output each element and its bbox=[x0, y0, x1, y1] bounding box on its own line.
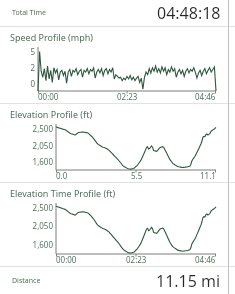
staticText: Total Time bbox=[12, 8, 46, 18]
staticText: Speed Profile (mph) bbox=[10, 31, 93, 43]
button[interactable]: Elevation Time Profile (ft) bbox=[0, 183, 235, 266]
staticText: 04:46 bbox=[195, 254, 216, 265]
staticText: 11.15 mi bbox=[156, 270, 221, 292]
staticText: 2,500 bbox=[32, 202, 53, 213]
staticText: 2,050 bbox=[32, 140, 53, 151]
staticText: 1,600 bbox=[32, 156, 53, 167]
staticText: Elevation Profile (ft) bbox=[10, 108, 93, 120]
staticText: 04:46 bbox=[195, 91, 216, 102]
staticText: 2,500 bbox=[32, 123, 53, 134]
staticText: 1,600 bbox=[32, 239, 53, 250]
staticText: Elevation Time Profile (ft) bbox=[10, 187, 116, 199]
staticText: 2 bbox=[30, 62, 35, 73]
staticText: 02:23 bbox=[117, 91, 138, 102]
staticText: 0 bbox=[30, 78, 35, 89]
staticText: 0.0 bbox=[56, 170, 68, 181]
staticText: 5 bbox=[30, 46, 35, 57]
staticText: 00:00 bbox=[56, 254, 77, 265]
staticText: 2,050 bbox=[32, 220, 53, 231]
staticText: 02:23 bbox=[126, 254, 147, 265]
staticText: 00:00 bbox=[38, 91, 59, 102]
button[interactable]: Distance bbox=[0, 267, 235, 294]
staticText: 11.1 bbox=[200, 170, 216, 181]
staticText: 5.5 bbox=[131, 170, 143, 181]
button[interactable]: Speed Profile (mph) bbox=[0, 27, 235, 103]
button[interactable]: Elevation Profile (ft) bbox=[0, 104, 235, 182]
staticText: 04:48:18 bbox=[157, 2, 221, 24]
staticText: Distance bbox=[12, 276, 41, 286]
button[interactable]: Total Time bbox=[0, 0, 235, 26]
